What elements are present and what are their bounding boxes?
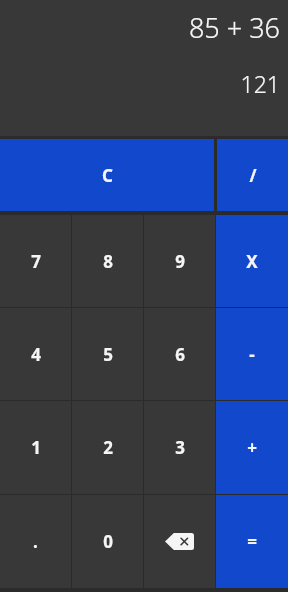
- staticText: 8: [103, 250, 113, 273]
- staticText: =: [247, 530, 257, 553]
- staticText: 4: [31, 343, 41, 366]
- button[interactable]: 7: [0, 215, 71, 307]
- staticText: 121: [0, 68, 280, 99]
- staticText: 5: [103, 343, 113, 366]
- staticText: 2: [103, 436, 113, 459]
- button[interactable]: +: [216, 401, 288, 494]
- staticText: 1: [31, 436, 41, 459]
- button[interactable]: 6: [144, 308, 215, 400]
- button[interactable]: 5: [72, 308, 143, 400]
- staticText: 3: [175, 436, 185, 459]
- staticText: C: [102, 164, 113, 187]
- staticText: 0: [103, 530, 113, 553]
- button[interactable]: /: [217, 139, 288, 211]
- staticText: 7: [31, 250, 41, 273]
- staticText: .: [33, 530, 38, 553]
- button[interactable]: 4: [0, 308, 71, 400]
- button[interactable]: 8: [72, 215, 143, 307]
- button[interactable]: 9: [144, 215, 215, 307]
- staticText: /: [249, 164, 257, 187]
- staticText: -: [249, 343, 255, 366]
- button[interactable]: Backspace: [144, 495, 215, 588]
- staticText: 9: [175, 250, 185, 273]
- staticText: X: [246, 250, 258, 273]
- button[interactable]: X: [216, 215, 288, 307]
- button[interactable]: C: [0, 139, 214, 211]
- button[interactable]: .: [0, 495, 71, 588]
- staticText: +: [247, 436, 257, 459]
- button[interactable]: 0: [72, 495, 143, 588]
- button[interactable]: -: [216, 308, 288, 400]
- button[interactable]: =: [216, 495, 288, 588]
- button[interactable]: 3: [144, 401, 215, 494]
- button[interactable]: 1: [0, 401, 71, 494]
- staticText: 6: [175, 343, 185, 366]
- staticText: 85 + 36: [0, 9, 280, 46]
- button[interactable]: 2: [72, 401, 143, 494]
